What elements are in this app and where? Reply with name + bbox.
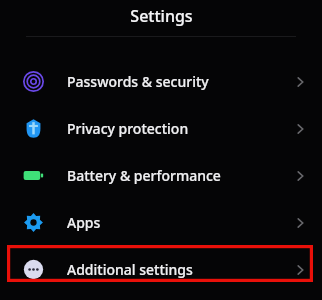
staticText: Privacy protection bbox=[67, 119, 189, 138]
other: Open Privacy protection bbox=[291, 120, 309, 138]
other: Open Additional settings bbox=[291, 261, 309, 279]
staticText: Battery & performance bbox=[67, 166, 221, 185]
button[interactable]: Battery & performance bbox=[0, 152, 322, 199]
other: Open Battery & performance bbox=[291, 167, 309, 185]
staticText: Apps bbox=[67, 213, 101, 232]
other: Open Passwords & security bbox=[291, 73, 309, 91]
button[interactable]: Passwords & security bbox=[0, 58, 322, 105]
staticText: Passwords & security bbox=[67, 72, 209, 91]
other: Open Apps bbox=[291, 214, 309, 232]
button[interactable]: Privacy protection bbox=[0, 105, 322, 152]
button[interactable]: Apps bbox=[0, 199, 322, 246]
staticText: Additional settings bbox=[67, 260, 193, 279]
staticText: Settings bbox=[130, 5, 193, 27]
button[interactable]: Additional settings bbox=[0, 246, 322, 293]
